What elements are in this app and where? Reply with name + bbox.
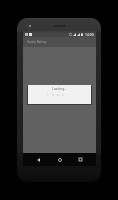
staticText: Sanity Rating: [27, 40, 47, 44]
button[interactable]: Home: [55, 155, 64, 164]
button[interactable]: Recent apps: [76, 155, 85, 164]
button[interactable]: Back: [34, 155, 43, 164]
staticText: Loading...: [52, 87, 67, 91]
button[interactable]: Sanity Rating: [23, 37, 96, 47]
staticText: 14:00: [85, 32, 94, 37]
